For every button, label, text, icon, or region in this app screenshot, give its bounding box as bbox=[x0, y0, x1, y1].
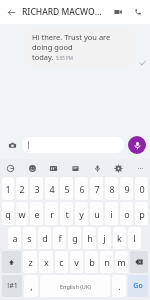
button[interactable]: . bbox=[112, 275, 126, 297]
button[interactable]: Go bbox=[128, 275, 148, 297]
staticText: b bbox=[89, 256, 95, 268]
staticText: , bbox=[30, 280, 33, 292]
staticText: z bbox=[28, 256, 33, 268]
staticText: 8 bbox=[109, 183, 115, 195]
button[interactable]: h bbox=[83, 227, 96, 249]
staticText: 1 bbox=[5, 183, 11, 195]
staticText: h bbox=[87, 232, 93, 244]
staticText: English (UK) bbox=[60, 283, 91, 290]
button[interactable]: w bbox=[16, 202, 28, 225]
button[interactable]: g bbox=[68, 227, 81, 249]
staticText: 9 bbox=[124, 183, 130, 195]
button[interactable]: More options bbox=[133, 161, 147, 175]
button[interactable]: s bbox=[23, 227, 36, 249]
button[interactable]: English (UK) bbox=[40, 275, 110, 297]
button[interactable]: Keyboard settings bbox=[111, 161, 125, 175]
button[interactable]: !#1 bbox=[2, 275, 22, 297]
button[interactable]: GIF bbox=[46, 161, 60, 175]
button[interactable]: 7 bbox=[90, 177, 103, 200]
button[interactable] bbox=[22, 137, 124, 153]
staticText: RICHARD MACWOOD… bbox=[22, 6, 108, 18]
button[interactable]: o bbox=[120, 202, 133, 225]
button[interactable]: j bbox=[98, 227, 111, 249]
staticText: o bbox=[124, 208, 130, 220]
staticText: 3 bbox=[34, 183, 40, 195]
button[interactable]: e bbox=[30, 202, 43, 225]
button[interactable]: 8 bbox=[105, 177, 118, 200]
button[interactable]: Shift bbox=[2, 251, 21, 273]
staticText: a bbox=[12, 232, 18, 244]
staticText: e bbox=[34, 208, 40, 220]
button[interactable]: b bbox=[85, 251, 98, 273]
button[interactable]: v bbox=[70, 251, 83, 273]
button[interactable]: Google search bbox=[3, 161, 17, 175]
button[interactable]: p bbox=[135, 202, 148, 225]
staticText: 5:55 PM bbox=[56, 55, 73, 61]
button[interactable]: c bbox=[55, 251, 68, 273]
staticText: today. bbox=[32, 52, 54, 62]
button[interactable]: i bbox=[105, 202, 118, 225]
staticText: p bbox=[139, 208, 145, 220]
staticText: t bbox=[65, 208, 69, 220]
button[interactable]: Voice input bbox=[90, 161, 104, 175]
button[interactable]: l bbox=[128, 227, 141, 249]
staticText: k bbox=[117, 232, 122, 244]
staticText: y bbox=[79, 208, 84, 220]
button[interactable]: 2 bbox=[16, 177, 28, 200]
button[interactable]: Call bbox=[128, 2, 148, 22]
staticText: s bbox=[27, 232, 32, 244]
staticText: u bbox=[94, 208, 100, 220]
staticText: v bbox=[74, 256, 79, 268]
staticText: w bbox=[18, 208, 26, 220]
button[interactable]: y bbox=[75, 202, 88, 225]
button[interactable]: 6 bbox=[75, 177, 88, 200]
staticText: f bbox=[58, 232, 62, 244]
button[interactable]: 0 bbox=[135, 177, 148, 200]
button[interactable]: 9 bbox=[120, 177, 133, 200]
staticText: n bbox=[104, 256, 110, 268]
button[interactable]: f bbox=[53, 227, 66, 249]
button[interactable]: Hi there. Trust you are doing good bbox=[26, 27, 136, 67]
button[interactable]: q bbox=[2, 202, 14, 225]
staticText: Hi there. Trust you are doing good bbox=[32, 32, 130, 52]
button[interactable]: 4 bbox=[45, 177, 58, 200]
button[interactable]: 5 bbox=[60, 177, 73, 200]
button[interactable]: t bbox=[60, 202, 73, 225]
button[interactable]: 3 bbox=[30, 177, 43, 200]
button[interactable]: Camera bbox=[4, 137, 20, 153]
button[interactable]: x bbox=[39, 251, 53, 273]
staticText: 7 bbox=[94, 183, 100, 195]
staticText: 5 bbox=[64, 183, 70, 195]
button[interactable]: 1 bbox=[2, 177, 14, 200]
staticText: d bbox=[42, 232, 48, 244]
staticText: 4 bbox=[49, 183, 55, 195]
staticText: !#1 bbox=[7, 281, 18, 291]
staticText: x bbox=[44, 256, 49, 268]
button[interactable]: Backspace bbox=[130, 251, 148, 273]
button[interactable]: r bbox=[45, 202, 58, 225]
staticText: j bbox=[103, 232, 106, 244]
button[interactable]: m bbox=[115, 251, 128, 273]
staticText: r bbox=[50, 208, 54, 220]
staticText: g bbox=[72, 232, 78, 244]
button[interactable]: z bbox=[23, 251, 37, 273]
button[interactable]: a bbox=[8, 227, 21, 249]
staticText: c bbox=[59, 256, 64, 268]
button[interactable]: Emoji bbox=[25, 161, 39, 175]
button[interactable]: Clipboard bbox=[68, 161, 82, 175]
button[interactable]: Back bbox=[0, 1, 22, 23]
button[interactable]: , bbox=[24, 275, 38, 297]
staticText: l bbox=[133, 232, 136, 244]
button[interactable]: d bbox=[38, 227, 51, 249]
staticText: i bbox=[110, 208, 113, 220]
staticText: Go bbox=[133, 281, 143, 291]
button[interactable]: n bbox=[100, 251, 113, 273]
button[interactable]: Video call bbox=[108, 2, 128, 22]
button[interactable]: k bbox=[113, 227, 126, 249]
staticText: q bbox=[5, 208, 11, 220]
button[interactable]: Voice message bbox=[128, 136, 146, 154]
button[interactable]: u bbox=[90, 202, 103, 225]
staticText: . bbox=[118, 280, 121, 292]
staticText: 6 bbox=[79, 183, 85, 195]
staticText: m bbox=[117, 256, 126, 268]
